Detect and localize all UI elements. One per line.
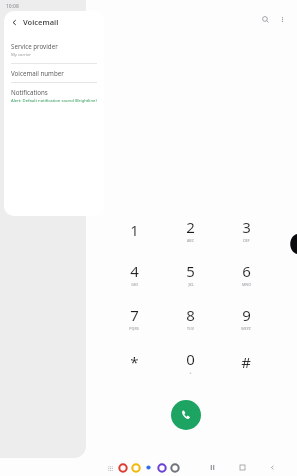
staticText: # xyxy=(241,352,251,372)
button[interactable]: All apps xyxy=(105,463,115,473)
staticText: 7 xyxy=(130,305,139,325)
staticText: 10:08 xyxy=(6,3,19,10)
staticText: + xyxy=(189,370,192,375)
button[interactable]: Back xyxy=(265,460,279,474)
staticText: 0 xyxy=(186,349,195,369)
button[interactable]: Search xyxy=(258,12,272,26)
button[interactable]: Home xyxy=(235,460,249,474)
staticText: 8 xyxy=(186,305,195,325)
button[interactable]: App xyxy=(156,462,167,473)
button[interactable]: Service provider xyxy=(4,37,104,63)
button[interactable]: 3 xyxy=(224,208,268,252)
staticText: Notifications xyxy=(11,88,48,96)
button[interactable]: 9 xyxy=(224,296,268,340)
staticText: GHI xyxy=(131,282,138,287)
staticText: 4 xyxy=(130,261,139,281)
staticText: 5 xyxy=(186,261,195,281)
button[interactable]: * xyxy=(112,340,156,384)
other: Back xyxy=(11,19,18,26)
button[interactable]: More options xyxy=(275,12,289,26)
button[interactable]: Back xyxy=(4,11,104,33)
staticText: Service provider xyxy=(11,42,58,50)
button[interactable]: App xyxy=(130,462,141,473)
button[interactable]: Recent apps xyxy=(205,460,219,474)
staticText: * xyxy=(130,352,139,372)
button[interactable]: 1 xyxy=(112,208,156,252)
button[interactable]: 0 xyxy=(168,340,212,384)
staticText: Alert: Default notification sound (Brigh… xyxy=(11,98,97,104)
button[interactable]: # xyxy=(224,340,268,384)
button[interactable]: App xyxy=(143,462,154,473)
staticText: JKL xyxy=(188,282,194,287)
button[interactable]: 8 xyxy=(168,296,212,340)
button[interactable]: 5 xyxy=(168,252,212,296)
staticText: WXYZ xyxy=(241,326,251,331)
staticText: Voicemail xyxy=(23,17,59,27)
button[interactable]: App xyxy=(117,462,128,473)
staticText: PQRS xyxy=(129,326,139,331)
button[interactable]: 6 xyxy=(224,252,268,296)
staticText: TUV xyxy=(187,326,194,331)
staticText: DEF xyxy=(243,238,250,243)
staticText: My carrier xyxy=(11,52,32,58)
staticText: 2 xyxy=(186,217,195,237)
staticText: 1 xyxy=(130,220,139,240)
button[interactable]: Notifications xyxy=(4,83,104,109)
button[interactable]: Voicemail number xyxy=(4,64,104,82)
button[interactable]: 4 xyxy=(112,252,156,296)
staticText: MNO xyxy=(242,282,251,287)
staticText: ABC xyxy=(187,238,194,243)
button[interactable]: App xyxy=(169,462,180,473)
staticText: 6 xyxy=(242,261,251,281)
staticText: Voicemail number xyxy=(11,69,64,77)
staticText: 3 xyxy=(242,217,251,237)
button[interactable]: 7 xyxy=(112,296,156,340)
button[interactable]: Call xyxy=(171,400,201,430)
button[interactable]: 2 xyxy=(168,208,212,252)
staticText: 9 xyxy=(242,305,251,325)
